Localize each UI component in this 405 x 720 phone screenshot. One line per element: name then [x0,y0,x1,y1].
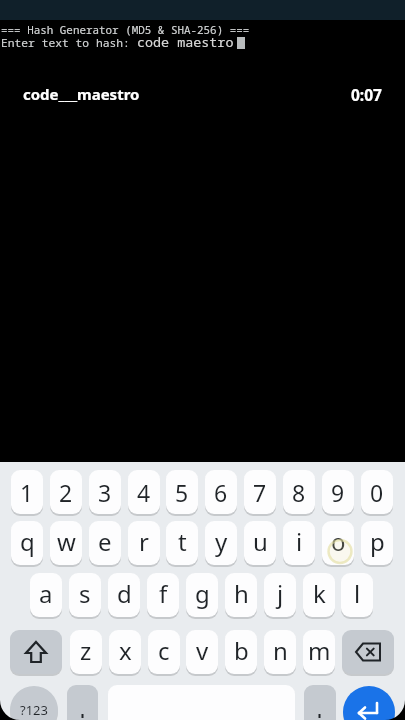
button[interactable]: p [361,521,393,565]
staticText: l [354,577,361,610]
staticText: f [159,577,168,610]
staticText: h [234,577,249,610]
button[interactable]: x [109,630,141,674]
staticText: m [308,634,331,667]
button[interactable]: 6 [205,470,237,514]
button[interactable]: l [341,573,373,617]
button[interactable]: z [70,630,102,674]
staticText: 3 [98,477,112,508]
staticText: d [117,577,132,610]
button[interactable]: c [148,630,180,674]
staticText: v [196,634,209,667]
button[interactable]: a [30,573,62,617]
button[interactable]: y [205,521,237,565]
staticText: u [253,525,268,558]
staticText: code___maestro [23,84,140,104]
button[interactable] [343,686,395,720]
staticText: t [178,525,187,558]
staticText: s [79,577,91,610]
button[interactable]: b [225,630,257,674]
button[interactable]: 1 [11,470,43,514]
staticText: 4 [137,477,151,508]
staticText: code maestro [137,33,234,51]
button[interactable]: q [11,521,43,565]
button[interactable] [342,630,394,674]
button[interactable]: v [186,630,218,674]
staticText: k [313,577,326,610]
button[interactable]: 0 [361,470,393,514]
staticText: 8 [292,477,306,508]
button[interactable]: n [264,630,296,674]
button[interactable]: j [264,573,296,617]
button[interactable]: o [322,521,354,565]
staticText: q [20,525,35,558]
button[interactable]: 2 [50,470,82,514]
staticText: ?123 [20,701,48,719]
button[interactable]: k [303,573,335,617]
button[interactable]: m [303,630,335,674]
staticText: 0 [370,477,384,508]
button[interactable] [304,685,336,720]
button[interactable]: ?123 [10,686,58,720]
button[interactable]: 3 [89,470,121,514]
button[interactable] [67,685,98,720]
staticText: a [39,577,53,610]
staticText: c [158,634,170,667]
button[interactable]: w [50,521,82,565]
button[interactable]: e [89,521,121,565]
staticText: r [139,525,149,558]
staticText: p [370,525,385,558]
button[interactable]: u [244,521,276,565]
button[interactable] [10,630,62,674]
button[interactable]: 9 [322,470,354,514]
staticText: e [98,525,112,558]
staticText: Enter text to hash: [1,35,130,50]
staticText: j [277,577,284,610]
staticText: 2 [59,477,73,508]
staticText: === Hash Generator (MD5 & SHA-256) === [1,22,250,37]
button[interactable]: i [283,521,315,565]
button[interactable]: h [225,573,257,617]
button[interactable]: s [69,573,101,617]
staticText: 0:07 [351,84,382,105]
button[interactable]: d [108,573,140,617]
button[interactable]: r [128,521,160,565]
button[interactable]: g [186,573,218,617]
staticText: 1 [20,477,34,508]
button[interactable]: 7 [244,470,276,514]
staticText: w [57,525,76,558]
button[interactable]: f [147,573,179,617]
button[interactable]: 4 [128,470,160,514]
staticText: b [234,634,249,667]
staticText: 7 [253,477,267,508]
staticText: z [80,634,92,667]
staticText: 9 [331,477,345,508]
staticText: n [273,634,288,667]
button[interactable]: 5 [166,470,198,514]
staticText: x [119,634,132,667]
button[interactable]: t [166,521,198,565]
button[interactable]: 8 [283,470,315,514]
staticText: g [195,577,210,610]
staticText: 6 [214,477,228,508]
staticText: o [331,525,346,558]
staticText: y [215,525,228,558]
staticText: i [296,525,303,558]
staticText: 5 [175,477,189,508]
